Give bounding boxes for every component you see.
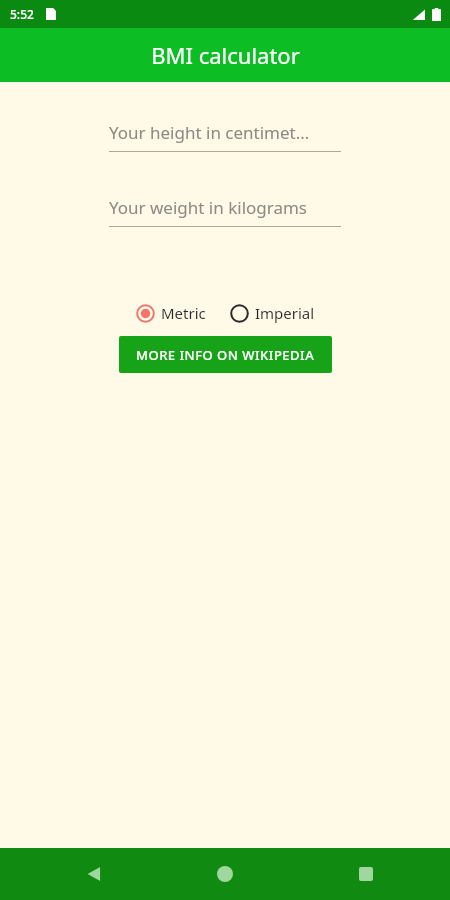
staticText: Your weight in kilograms (109, 196, 308, 219)
button[interactable]: Imperial (228, 299, 317, 327)
button[interactable]: Home (201, 850, 249, 898)
staticText: MORE INFO ON WIKIPEDIA (136, 346, 315, 364)
button[interactable]: Metric (134, 299, 208, 327)
staticText: 5:52 (10, 6, 34, 22)
staticText: Your height in centimet… (109, 121, 310, 144)
button[interactable]: Your height in centimet… (109, 118, 341, 152)
staticText: Imperial (255, 303, 315, 323)
button[interactable]: Back (70, 850, 118, 898)
staticText: Metric (161, 303, 206, 323)
staticText: BMI calculator (151, 40, 300, 70)
button[interactable]: Your weight in kilograms (109, 193, 341, 227)
button[interactable]: MORE INFO ON WIKIPEDIA (119, 336, 332, 373)
button[interactable]: Recent apps (342, 850, 390, 898)
